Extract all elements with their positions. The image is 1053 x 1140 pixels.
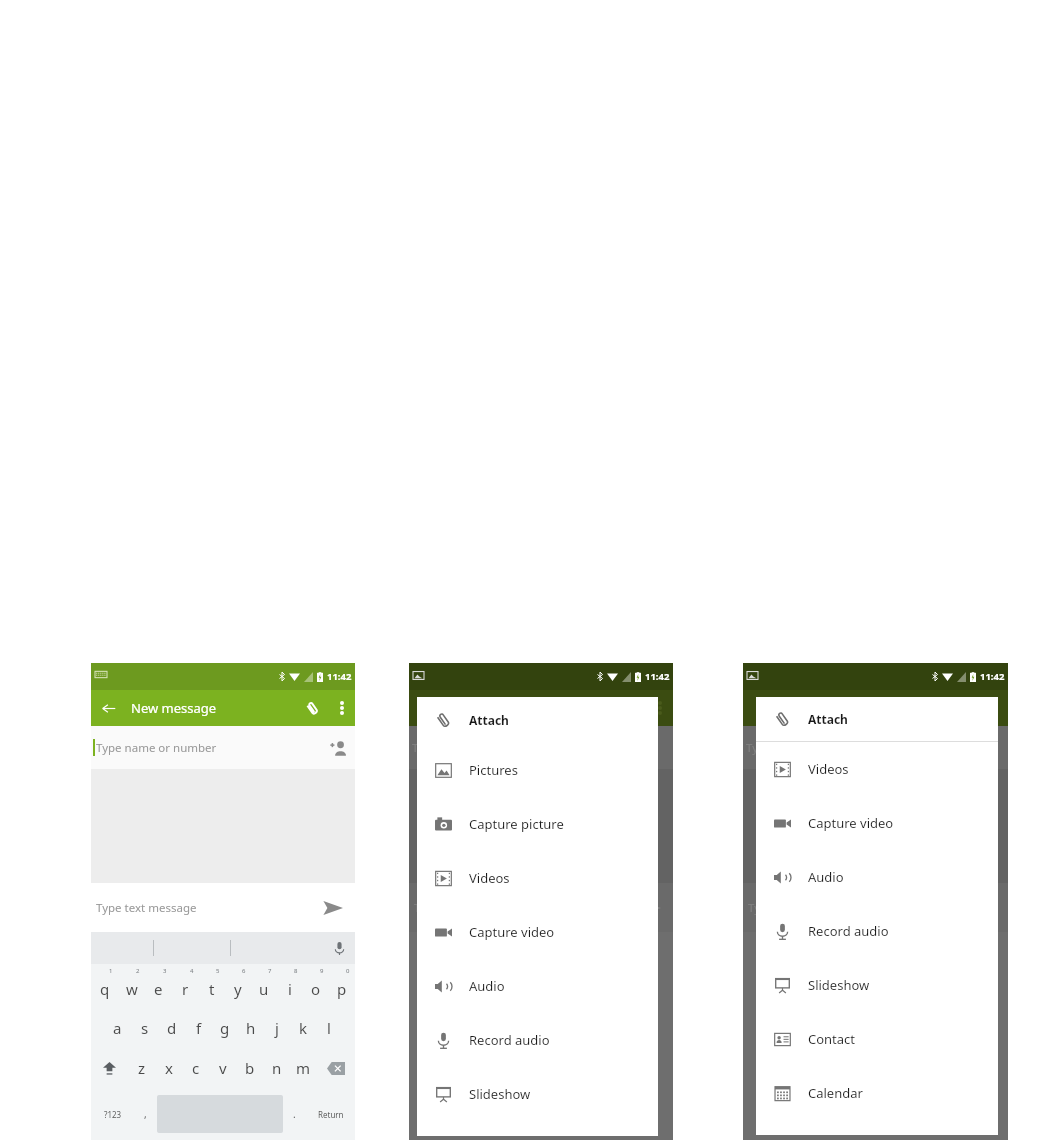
staticText: 4	[190, 967, 194, 975]
staticText: 5	[216, 967, 220, 975]
staticText: Videos	[808, 760, 849, 778]
button[interactable]: Attach	[417, 697, 658, 743]
staticText: ?123	[104, 1109, 122, 1120]
staticText: 11:42	[980, 670, 1005, 683]
button[interactable]: Add contact	[321, 731, 355, 765]
button[interactable]: Back	[91, 690, 127, 726]
button[interactable]: Pictures	[417, 743, 658, 797]
button[interactable]: v	[209, 1048, 236, 1088]
staticText: w	[126, 979, 138, 999]
staticText: 1	[109, 967, 113, 975]
staticText: 9	[320, 967, 324, 975]
button[interactable]: Videos	[417, 851, 658, 905]
button[interactable]: Backspace	[317, 1048, 355, 1088]
staticText: Type name or number	[746, 740, 867, 756]
button[interactable]: s	[131, 1008, 158, 1048]
staticText: 11:42	[645, 670, 670, 683]
button[interactable]: Audio	[756, 850, 998, 904]
staticText: m	[296, 1058, 311, 1078]
button[interactable]: ?123	[91, 1088, 134, 1140]
staticText: k	[299, 1018, 308, 1038]
button[interactable]: Capture picture	[417, 797, 658, 851]
button[interactable]: Return	[306, 1088, 355, 1140]
staticText: Capture video	[808, 814, 894, 832]
button[interactable]: .	[283, 1088, 306, 1140]
button[interactable]: m	[290, 1048, 317, 1088]
button[interactable]: 1	[91, 964, 118, 1008]
staticText: t	[209, 979, 215, 999]
button[interactable]: j	[264, 1008, 290, 1048]
staticText: Record audio	[469, 1031, 550, 1049]
button[interactable]: Slideshow	[417, 1067, 658, 1121]
staticText: d	[167, 1018, 177, 1038]
button[interactable]: x	[155, 1048, 182, 1088]
staticText: 2	[136, 967, 140, 975]
staticText: f	[196, 1018, 202, 1038]
button[interactable]: Videos	[756, 742, 998, 796]
button[interactable]: d	[158, 1008, 185, 1048]
button[interactable]: Record audio	[756, 904, 998, 958]
button[interactable]: Type name or number	[91, 726, 355, 769]
staticText: i	[288, 979, 292, 999]
staticText: 6	[242, 967, 246, 975]
button[interactable]: z	[128, 1048, 155, 1088]
staticText: r	[182, 979, 189, 999]
button[interactable]: Calendar	[756, 1066, 998, 1120]
staticText: y	[234, 979, 242, 999]
button[interactable]: b	[236, 1048, 263, 1088]
staticText: New message	[131, 699, 217, 717]
staticText: Type name or number	[96, 740, 217, 756]
staticText: .	[293, 1107, 296, 1121]
staticText: Audio	[469, 977, 505, 995]
staticText: q	[100, 979, 110, 999]
button[interactable]: 3	[145, 964, 172, 1008]
button[interactable]: Capture video	[756, 796, 998, 850]
button[interactable]: 8	[277, 964, 303, 1008]
staticText: Capture video	[469, 923, 555, 941]
button[interactable]: c	[182, 1048, 209, 1088]
button[interactable]: Audio	[417, 959, 658, 1013]
staticText: Record audio	[808, 922, 889, 940]
staticText: 8	[294, 967, 298, 975]
button[interactable]: l	[316, 1008, 342, 1048]
staticText: x	[165, 1058, 173, 1078]
staticText: Type text message	[748, 900, 964, 916]
staticText: z	[138, 1058, 146, 1078]
button[interactable]: Slideshow	[756, 958, 998, 1012]
button[interactable]: n	[263, 1048, 290, 1088]
staticText: g	[220, 1018, 230, 1038]
staticText: c	[192, 1058, 200, 1078]
staticText: Calendar	[808, 1084, 863, 1102]
button[interactable]: ,	[134, 1088, 157, 1140]
staticText: Attach	[469, 712, 509, 728]
button[interactable]: Voice input	[323, 932, 355, 964]
button[interactable]: Record audio	[417, 1013, 658, 1067]
button[interactable]: f	[185, 1008, 212, 1048]
button[interactable]: 6	[225, 964, 251, 1008]
button[interactable]: Capture video	[417, 905, 658, 959]
button[interactable]: k	[290, 1008, 316, 1048]
button[interactable]: h	[238, 1008, 264, 1048]
button[interactable]: 2	[118, 964, 145, 1008]
button[interactable]: Shift	[91, 1048, 128, 1088]
staticText: a	[113, 1018, 122, 1038]
button[interactable]: Attach	[756, 697, 998, 741]
button[interactable]: Type text message	[96, 900, 311, 916]
staticText: 11:42	[327, 670, 352, 683]
button[interactable]: 5	[199, 964, 225, 1008]
button[interactable]: a	[104, 1008, 131, 1048]
button[interactable]: g	[212, 1008, 238, 1048]
staticText: p	[337, 979, 347, 999]
button[interactable]: 0	[329, 964, 355, 1008]
staticText: ,	[144, 1107, 147, 1121]
button[interactable]: 9	[303, 964, 329, 1008]
staticText: Attach	[808, 711, 848, 727]
button[interactable]: Send	[311, 886, 355, 930]
button[interactable]: More options	[329, 695, 355, 721]
button[interactable]: 4	[172, 964, 199, 1008]
button[interactable]: 7	[251, 964, 277, 1008]
button[interactable]: Attach	[295, 691, 329, 725]
staticText: b	[245, 1058, 255, 1078]
button[interactable]: Contact	[756, 1012, 998, 1066]
